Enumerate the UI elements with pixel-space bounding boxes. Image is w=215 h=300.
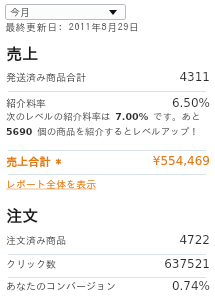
staticText: 次のレベルの紹介料率は 7.00% です。あと 5690 個の商品を紹介するとレ… [6,111,212,138]
button[interactable]: 売上合計 * [0,151,215,174]
staticText: ¥554,469 [0,154,210,168]
staticText: 0.74% [0,279,210,293]
button[interactable]: クリック数 [0,255,215,277]
staticText: 注文済み商品 [6,235,66,245]
staticText: 売上 [6,46,38,62]
button[interactable]: レポート全体を表示 [6,177,96,191]
button[interactable]: 注文済み商品 [0,226,215,254]
button[interactable]: 紹介料率 [0,92,215,110]
button[interactable]: あなたのコンバージョン [0,278,215,299]
button[interactable]: 今月 [5,4,126,20]
staticText: あなたのコンバージョン [6,281,116,291]
staticText: クリック数 [6,259,56,269]
staticText: 発送済み商品合計 [6,72,86,82]
staticText: 6.50% [0,96,210,110]
staticText: 紹介料率 [6,98,46,108]
button[interactable]: 発送済み商品合計 [0,62,215,91]
staticText: 4311 [0,70,210,84]
staticText: 637521 [0,257,210,271]
staticText: 4722 [0,233,210,247]
staticText: 最終更新日: 2011年8月29日 [5,22,140,32]
staticText: 売上合計 * [6,156,61,167]
staticText: 今月 [10,7,30,17]
staticText: レポート全体を表示 [6,179,96,189]
staticText: 注文 [6,208,38,224]
